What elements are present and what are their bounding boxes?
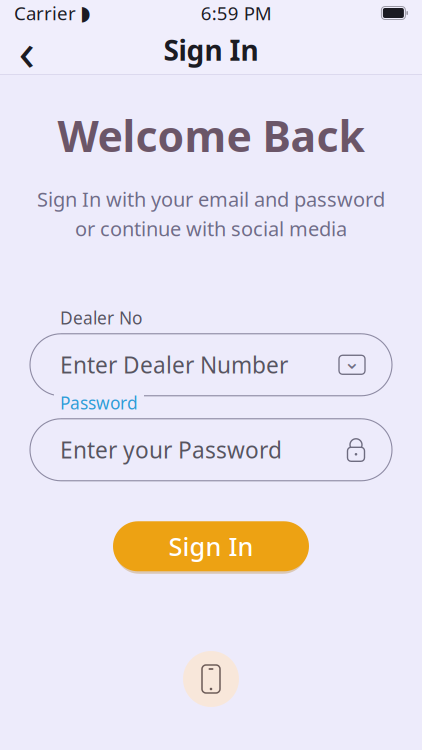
- staticText: Dealer No: [60, 306, 142, 329]
- staticText: Enter your Password: [60, 435, 282, 465]
- button[interactable]: Back: [0, 30, 42, 70]
- staticText: 6:59 PM: [201, 1, 272, 25]
- staticText: ‹: [18, 15, 35, 85]
- button[interactable]: Sign In: [113, 518, 309, 575]
- button[interactable]: Dealer No: [0, 334, 422, 396]
- staticText: Password: [60, 391, 138, 414]
- staticText: Sign In with your email and password: [37, 186, 385, 212]
- staticText: ◗: [80, 2, 91, 24]
- button[interactable]: Sign in with device: [183, 651, 239, 707]
- staticText: ⌄: [343, 350, 360, 373]
- staticText: Enter Dealer Number: [60, 350, 288, 380]
- staticText: Sign In: [163, 31, 258, 69]
- staticText: Carrier: [14, 1, 76, 25]
- staticText: Welcome Back: [57, 107, 364, 164]
- button[interactable]: Password: [0, 419, 422, 481]
- staticText: or continue with social media: [75, 215, 347, 242]
- staticText: Sign In: [168, 529, 253, 563]
